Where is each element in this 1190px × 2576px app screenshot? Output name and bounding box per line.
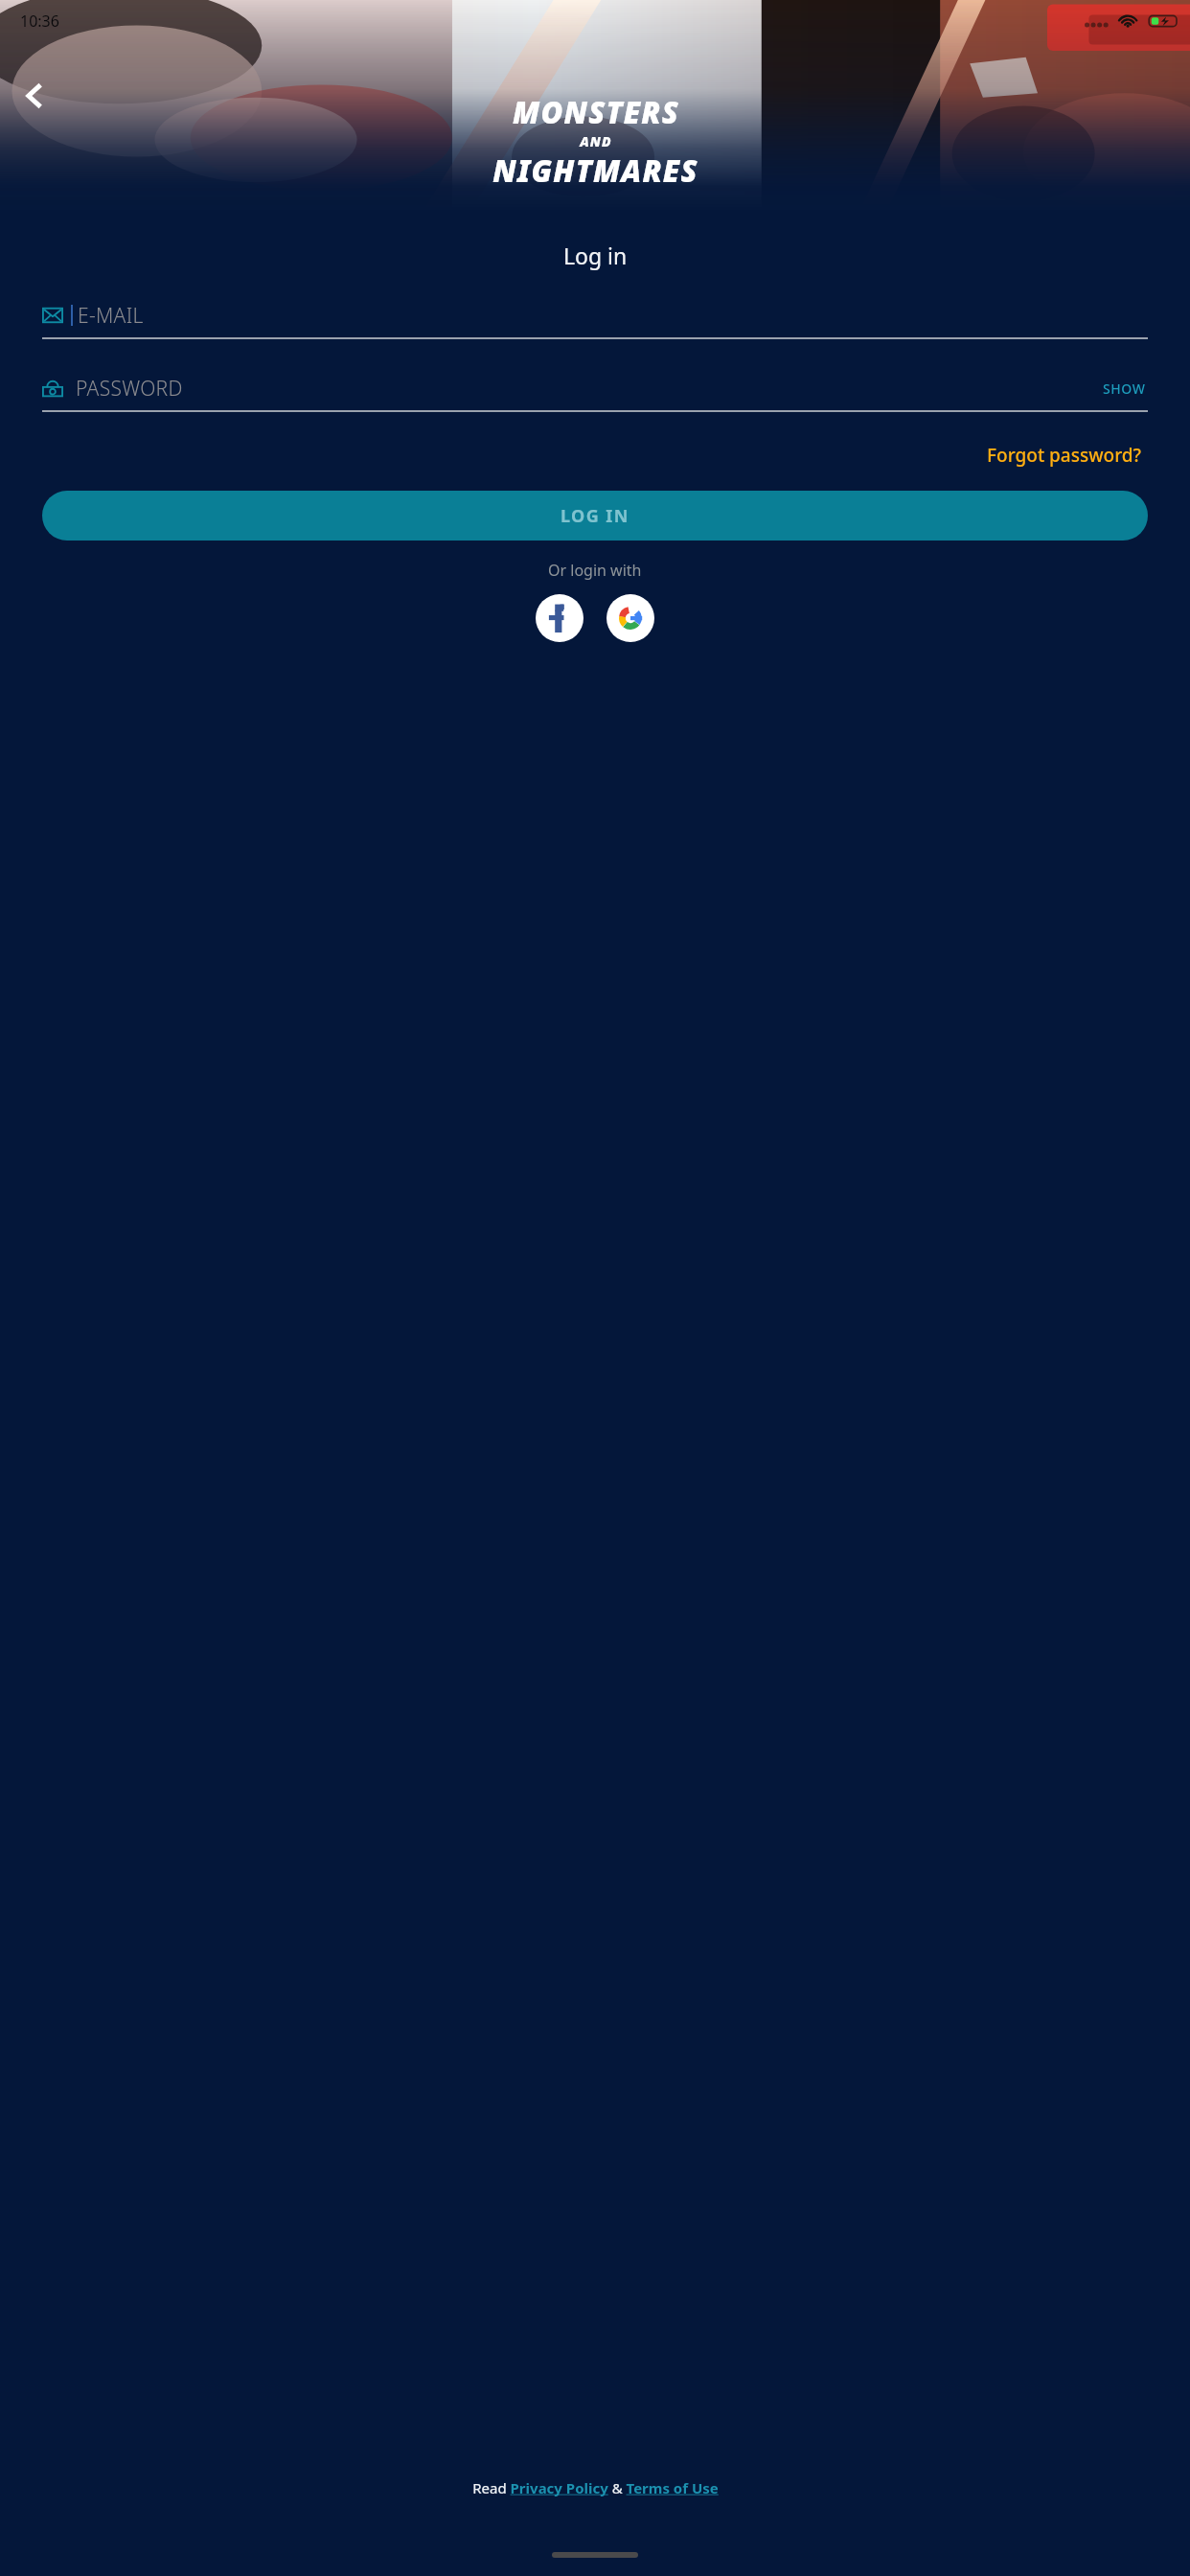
button[interactable]: Log in with Facebook: [536, 594, 584, 642]
staticText: Or login with: [548, 560, 642, 581]
staticText: Forgot password?: [987, 443, 1142, 468]
staticText: MONSTERS: [513, 92, 679, 132]
button[interactable]: SHOW: [1101, 372, 1148, 405]
staticText: Read Privacy Policy & Terms of Use: [472, 2478, 719, 2497]
staticText: PASSWORD: [76, 375, 183, 402]
staticText: SHOW: [1103, 379, 1146, 398]
button[interactable]: E-MAIL: [42, 293, 1148, 339]
button[interactable]: PASSWORD: [42, 366, 1148, 412]
button[interactable]: Read Privacy Policy & Terms of Use: [472, 2478, 719, 2497]
staticText: 10:36: [20, 11, 59, 32]
button[interactable]: LOG IN: [42, 491, 1148, 540]
button[interactable]: Forgot password?: [981, 437, 1148, 473]
staticText: E-MAIL: [78, 302, 144, 330]
staticText: AND: [580, 132, 612, 150]
staticText: NIGHTMARES: [492, 150, 698, 191]
staticText: Log in: [563, 241, 628, 270]
button[interactable]: Log in with Google: [606, 594, 654, 642]
button[interactable]: Back: [4, 65, 65, 126]
staticText: LOG IN: [561, 504, 629, 528]
